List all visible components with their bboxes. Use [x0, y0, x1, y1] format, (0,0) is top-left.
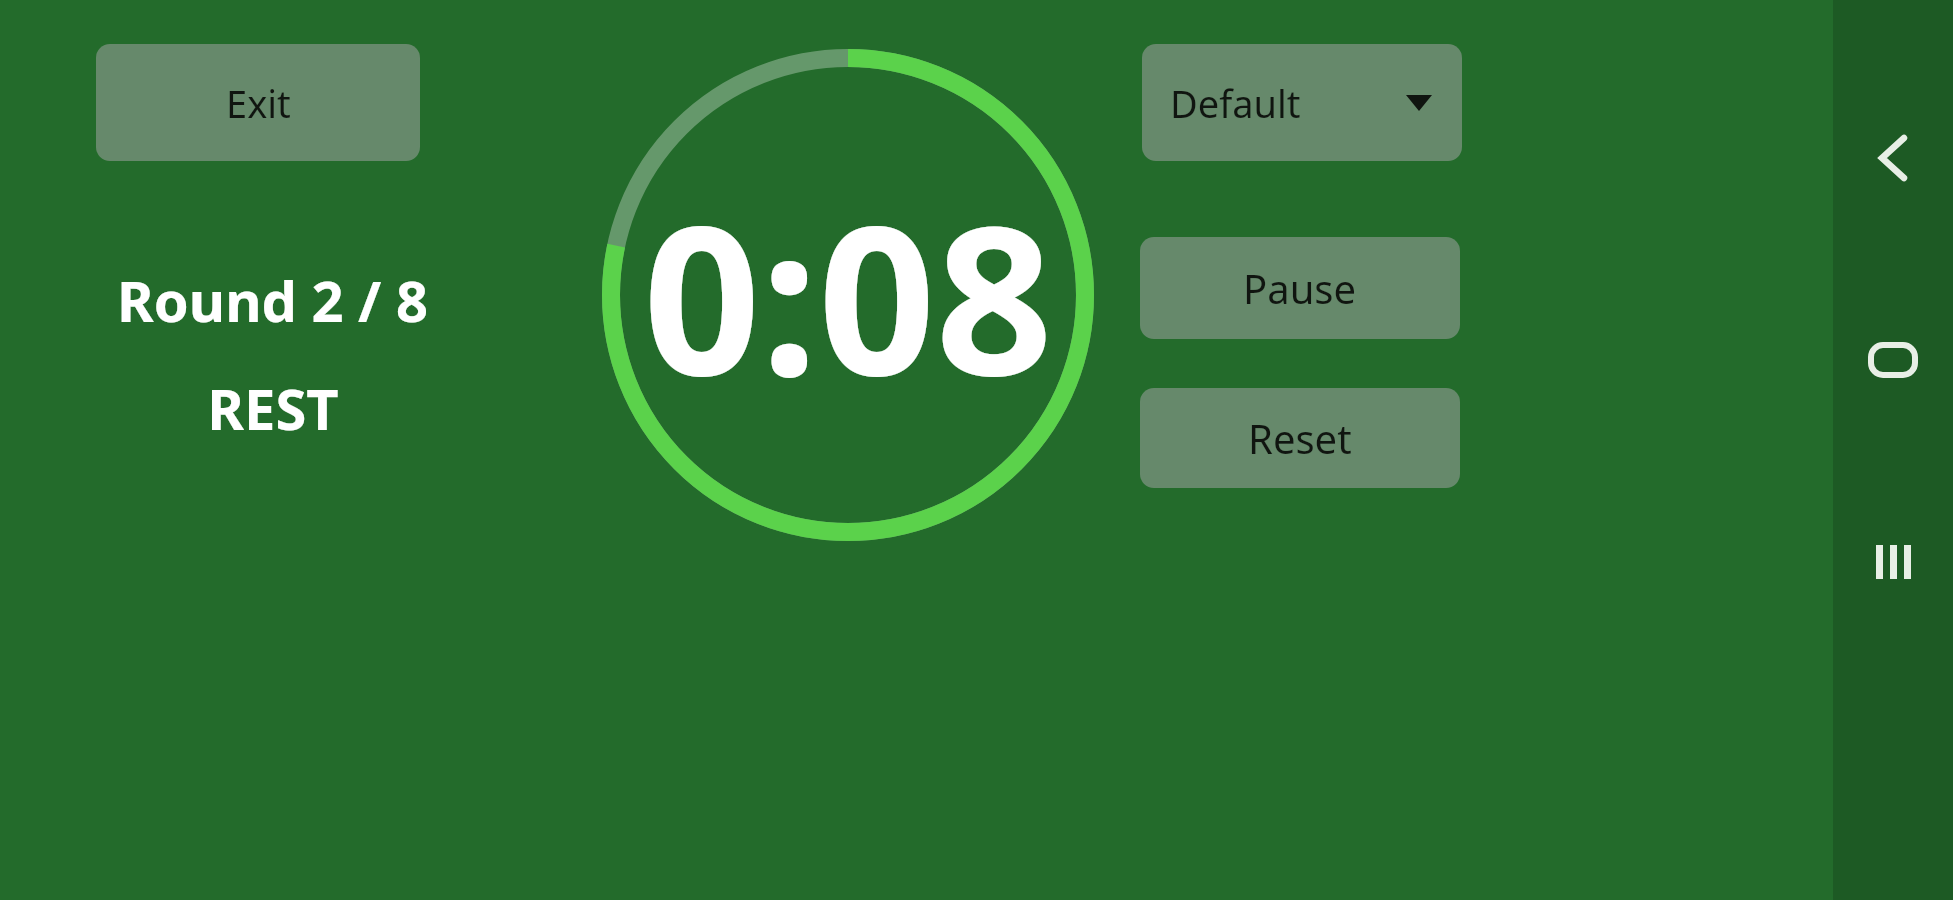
staticText: Reset [1248, 411, 1352, 465]
button[interactable]: Recent apps [1853, 522, 1933, 602]
button[interactable]: Home [1853, 320, 1933, 400]
staticText: Round 2 / 8 [117, 262, 428, 338]
button[interactable]: Reset [1140, 388, 1460, 488]
button[interactable]: Default [1142, 44, 1462, 161]
button[interactable]: Back [1853, 118, 1933, 198]
button[interactable]: Exit [96, 44, 420, 161]
button[interactable]: Pause [1140, 237, 1460, 339]
staticText: Exit [226, 77, 291, 129]
staticText: Pause [1243, 261, 1357, 315]
staticText: REST [207, 370, 339, 446]
staticText: 0:08 [643, 156, 1053, 435]
staticText: Default [1170, 77, 1301, 129]
